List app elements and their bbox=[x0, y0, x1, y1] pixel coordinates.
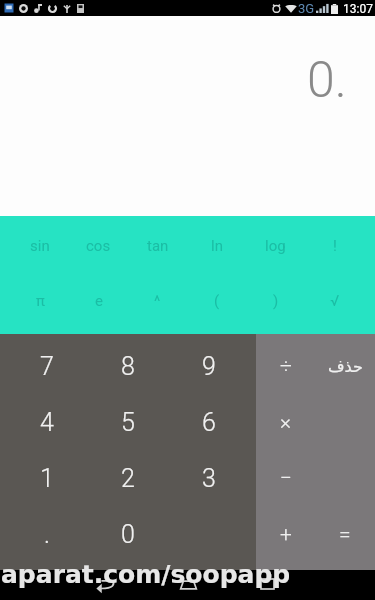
staticText: 4 bbox=[40, 408, 54, 437]
staticText: ln bbox=[211, 237, 223, 255]
button[interactable]: sin bbox=[11, 218, 69, 273]
button[interactable]: 8 bbox=[87, 338, 168, 394]
button[interactable]: = bbox=[315, 506, 375, 562]
staticText: 9 bbox=[202, 352, 216, 381]
staticText: π bbox=[36, 292, 45, 310]
button[interactable]: Back bbox=[89, 569, 121, 599]
button[interactable]: e bbox=[69, 273, 128, 328]
button[interactable]: ÷ bbox=[256, 338, 315, 394]
staticText: حذف bbox=[328, 357, 363, 376]
staticText: ) bbox=[273, 292, 279, 310]
staticText: × bbox=[280, 410, 291, 435]
staticText: ( bbox=[214, 292, 220, 310]
staticText: 7 bbox=[40, 352, 54, 381]
staticText: sin bbox=[30, 237, 50, 255]
button[interactable]: cos bbox=[69, 218, 128, 273]
staticText: 5 bbox=[121, 408, 135, 437]
staticText: log bbox=[265, 237, 286, 255]
staticText: ! bbox=[333, 237, 337, 255]
button[interactable]: − bbox=[256, 450, 315, 506]
staticText: 2 bbox=[121, 464, 135, 493]
staticText: = bbox=[339, 522, 351, 547]
staticText: aparat.com/soopapp bbox=[1, 560, 291, 589]
staticText: − bbox=[280, 466, 292, 491]
button[interactable]: 4 bbox=[7, 394, 87, 450]
staticText: e bbox=[95, 292, 103, 310]
button[interactable]: حذف bbox=[315, 338, 375, 394]
staticText: 13:07 bbox=[343, 2, 373, 16]
button[interactable]: tan bbox=[128, 218, 187, 273]
staticText: tan bbox=[147, 237, 169, 255]
button[interactable]: 1 bbox=[7, 450, 87, 506]
staticText: cos bbox=[86, 237, 111, 255]
staticText: ÷ bbox=[280, 354, 292, 379]
staticText: 8 bbox=[121, 352, 135, 381]
button[interactable]: . bbox=[7, 506, 87, 562]
button[interactable]: 6 bbox=[168, 394, 249, 450]
staticText: 1 bbox=[40, 464, 54, 493]
button[interactable]: Recent apps bbox=[251, 569, 283, 599]
button[interactable]: π bbox=[11, 273, 69, 328]
button[interactable]: 5 bbox=[87, 394, 168, 450]
staticText: 6 bbox=[202, 408, 216, 437]
button[interactable]: log bbox=[246, 218, 305, 273]
staticText: + bbox=[280, 522, 292, 547]
button[interactable]: 0 bbox=[87, 506, 168, 562]
staticText: . bbox=[44, 520, 50, 549]
button[interactable]: 7 bbox=[7, 338, 87, 394]
button[interactable]: Home bbox=[172, 569, 204, 599]
button[interactable]: ln bbox=[187, 218, 246, 273]
staticText: 3 bbox=[202, 464, 216, 493]
button[interactable]: 9 bbox=[168, 338, 249, 394]
staticText: 0 bbox=[121, 520, 135, 549]
staticText: √ bbox=[330, 292, 339, 310]
staticText: ^ bbox=[154, 292, 161, 310]
button[interactable]: 3 bbox=[168, 450, 249, 506]
button[interactable]: + bbox=[256, 506, 315, 562]
button[interactable]: 2 bbox=[87, 450, 168, 506]
staticText: 3G bbox=[298, 1, 315, 16]
staticText: 0. bbox=[307, 51, 347, 110]
button[interactable]: × bbox=[256, 394, 315, 450]
